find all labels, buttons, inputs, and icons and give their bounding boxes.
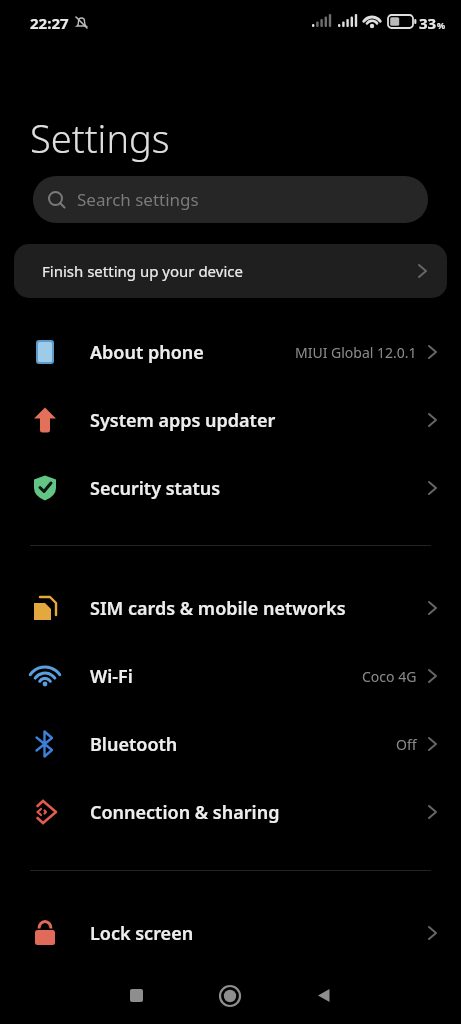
button[interactable]: Wi-Fi: [0, 654, 461, 698]
button[interactable]: [317, 989, 330, 1002]
button[interactable]: Security status: [0, 466, 461, 510]
staticText: System apps updater: [90, 408, 417, 433]
staticText: Finish setting up your device: [42, 261, 417, 281]
button[interactable]: SIM cards & mobile networks: [0, 586, 461, 630]
button[interactable]: [219, 985, 241, 1007]
staticText: 22:27: [30, 13, 69, 33]
staticText: MIUI Global 12.0.1: [295, 343, 417, 362]
button[interactable]: Bluetooth: [0, 722, 461, 766]
button[interactable]: Finish setting up your device: [14, 244, 447, 298]
staticText: About phone: [90, 340, 295, 365]
staticText: %: [437, 19, 446, 31]
button[interactable]: Lock screen: [0, 911, 461, 955]
staticText: Security status: [90, 476, 417, 501]
button[interactable]: Search settings: [33, 176, 428, 223]
button[interactable]: About phone: [0, 330, 461, 374]
staticText: Wi-Fi: [90, 664, 362, 689]
staticText: Bluetooth: [90, 732, 396, 757]
button[interactable]: [130, 989, 143, 1002]
staticText: 33: [419, 13, 437, 33]
staticText: Off: [396, 735, 417, 754]
button[interactable]: System apps updater: [0, 398, 461, 442]
staticText: Settings: [30, 112, 170, 164]
staticText: SIM cards & mobile networks: [90, 596, 417, 621]
staticText: Search settings: [77, 188, 199, 211]
staticText: Coco 4G: [362, 667, 417, 686]
staticText: Lock screen: [90, 921, 417, 946]
button[interactable]: Connection & sharing: [0, 790, 461, 834]
staticText: Connection & sharing: [90, 800, 417, 825]
